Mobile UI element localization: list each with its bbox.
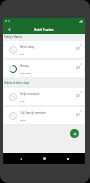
staticText: Habit Tracker	[34, 28, 54, 32]
button[interactable]: Recents	[62, 153, 73, 164]
button[interactable]: Add habit	[70, 129, 79, 138]
staticText: Everyday	[20, 71, 31, 74]
button[interactable]: Hoops	[4, 60, 84, 77]
staticText: 2/3	[76, 66, 81, 70]
staticText: Help someone	[20, 92, 40, 96]
button[interactable]: Back	[6, 26, 13, 33]
staticText: 0/1	[76, 47, 81, 51]
staticText: Sat	[20, 52, 24, 55]
staticText: Today's Habits	[4, 35, 22, 39]
staticText: Rest today	[20, 45, 35, 49]
staticText: Sun	[20, 99, 25, 102]
staticText: 0/1	[76, 94, 81, 98]
staticText: Hoops	[20, 64, 29, 68]
staticText: Call family member	[20, 111, 47, 115]
staticText: 0/1	[76, 113, 81, 117]
staticText: Mon	[20, 118, 26, 121]
staticText: Habits of other days	[4, 81, 30, 85]
button[interactable]: Back	[15, 153, 26, 164]
button[interactable]: Rest today	[4, 41, 84, 58]
button[interactable]: Call family member	[4, 107, 84, 124]
button[interactable]: Help someone	[4, 88, 84, 105]
button[interactable]: Home	[39, 153, 50, 164]
